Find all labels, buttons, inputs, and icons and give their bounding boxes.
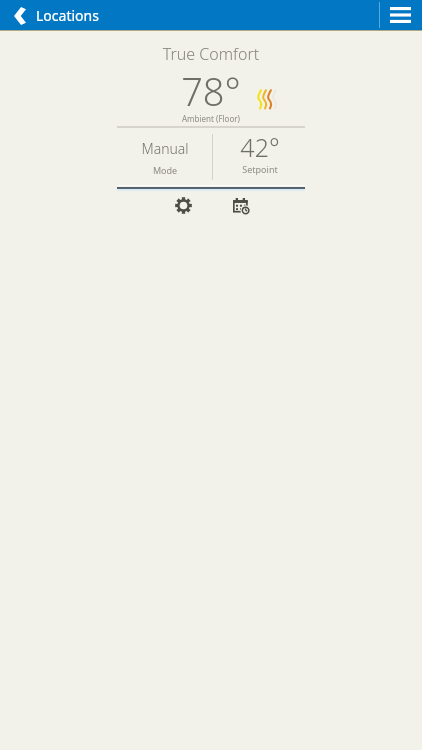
- button[interactable]: Settings: [167, 189, 199, 221]
- button[interactable]: Manual: [118, 134, 212, 182]
- staticText: True Comfort: [0, 43, 422, 65]
- button[interactable]: Back to Locations: [0, 0, 99, 30]
- staticText: Locations: [36, 6, 99, 25]
- staticText: Setpoint: [213, 163, 307, 175]
- button[interactable]: 42°: [213, 130, 307, 178]
- staticText: 78°: [0, 65, 422, 117]
- staticText: 42°: [213, 130, 307, 164]
- staticText: Manual: [118, 139, 212, 158]
- button[interactable]: Menu: [380, 0, 420, 30]
- staticText: Ambient (Floor): [0, 113, 422, 124]
- staticText: Mode: [118, 164, 212, 176]
- button[interactable]: Schedule: [225, 190, 257, 222]
